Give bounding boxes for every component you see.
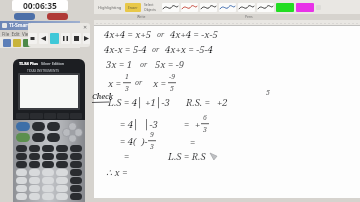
button[interactable]: Calculator key (16, 161, 27, 168)
staticText: 00:06:35 (23, 0, 57, 11)
button[interactable]: Calculator key (42, 145, 54, 152)
button[interactable]: Magenta highlighter (296, 3, 314, 12)
button[interactable]: Calculator key (56, 193, 68, 200)
staticText: 3x = 1 (106, 58, 133, 71)
staticText: = (190, 136, 196, 149)
button[interactable]: Tool (13, 39, 21, 47)
staticText: or (135, 78, 143, 88)
button[interactable]: Playback control (39, 33, 48, 44)
staticText: 4x+4 = −x−5 (170, 28, 218, 41)
button[interactable]: Calculator key (29, 177, 40, 184)
button[interactable]: Calculator key (70, 145, 82, 152)
button[interactable]: Calculator key (42, 161, 54, 168)
staticText: or (152, 45, 160, 55)
staticText: 4x−x = 5−4 (104, 43, 147, 56)
button[interactable]: Calculator key (32, 133, 45, 142)
staticText: 9 (150, 130, 154, 140)
staticText: 3 (125, 84, 129, 94)
button[interactable]: Calculator key (16, 193, 27, 200)
button[interactable]: Tool (33, 39, 41, 47)
button[interactable]: Calculator key (42, 177, 54, 184)
button[interactable]: Calculator key (32, 122, 45, 131)
button[interactable]: Reset (47, 13, 68, 20)
staticText: or (140, 60, 148, 70)
button[interactable]: Calculator key (29, 145, 40, 152)
button[interactable]: Calculator key (16, 153, 27, 160)
staticText: 3 (203, 125, 207, 135)
button[interactable]: Calculator key (16, 133, 30, 142)
button[interactable]: Calculator key (56, 153, 68, 160)
button[interactable]: Calculator key (70, 161, 82, 168)
button[interactable]: Playback control (50, 33, 59, 44)
button[interactable]: Calculator key (70, 177, 82, 184)
staticText: x = (153, 77, 166, 90)
staticText: 6 (203, 113, 207, 123)
staticText: Highlighting (98, 5, 122, 10)
button[interactable]: Green highlighter (276, 3, 294, 12)
button[interactable]: Calculator key (16, 177, 27, 184)
staticText: Select Objects (144, 2, 156, 12)
button[interactable]: Calculator key (56, 145, 68, 152)
button[interactable]: Calculator key (29, 193, 40, 200)
button[interactable]: Calculator key (56, 185, 68, 192)
button[interactable]: Pause (14, 13, 35, 20)
button[interactable]: ✕ (83, 24, 88, 30)
button[interactable]: Calculator key (16, 169, 27, 176)
button[interactable]: Calculator key (42, 153, 54, 160)
button[interactable]: Calculator key (29, 161, 40, 168)
button[interactable]: TI-84 Plus Silver Edition calculator (13, 59, 85, 202)
staticText: 5x = −9 (155, 58, 185, 71)
staticText: Eraser (128, 6, 138, 10)
staticText: Check (92, 92, 113, 102)
button[interactable]: Pen (257, 3, 274, 12)
button[interactable]: Calculator key (29, 153, 40, 160)
button[interactable]: Calculator key (29, 169, 40, 176)
staticText: R.S. = (186, 96, 211, 109)
staticText: 4x+x = −5−4 (165, 43, 213, 56)
button[interactable]: Calculator key (47, 122, 60, 131)
button[interactable]: Calculator key (29, 185, 40, 192)
staticText: 1 (125, 72, 129, 82)
button[interactable]: Calculator key (42, 185, 54, 192)
staticText: + (195, 118, 201, 131)
staticText: −9 (169, 72, 176, 82)
button[interactable]: Pen (219, 3, 236, 12)
button[interactable]: Pen (238, 3, 255, 12)
button[interactable]: Pen (181, 3, 198, 12)
staticText: = 4│ │−3 (120, 118, 158, 131)
button[interactable]: Calculator key (70, 193, 82, 200)
button[interactable]: Calculator key (16, 185, 27, 192)
staticText: TI-SmartV (9, 22, 33, 29)
button[interactable]: Calculator key (16, 145, 27, 152)
button[interactable]: Calculator key (70, 185, 82, 192)
staticText: L.S = 4│ +1│−3 (108, 96, 170, 109)
button[interactable]: Calculator key (42, 193, 54, 200)
button[interactable]: Playback control (61, 33, 70, 44)
button[interactable]: Eraser (125, 3, 141, 12)
button[interactable]: Playback control (83, 33, 90, 44)
button[interactable]: Calculator key (16, 122, 30, 131)
staticText: Pens (245, 14, 253, 19)
button[interactable]: Calculator key (42, 169, 54, 176)
button[interactable]: Calculator key (56, 177, 68, 184)
button[interactable]: Calculator key (56, 161, 68, 168)
button[interactable]: Playback control (72, 33, 81, 44)
button[interactable]: Calculator key (47, 133, 60, 142)
button[interactable]: Tool (23, 39, 31, 47)
staticText: TI-84 Plus (19, 61, 39, 66)
button[interactable]: Calculator key (70, 153, 82, 160)
button[interactable]: Pen (200, 3, 217, 12)
button[interactable]: Pen (162, 3, 179, 12)
button[interactable]: Calculator key (70, 169, 82, 176)
button[interactable]: Playback control (28, 33, 37, 44)
button[interactable]: Tool (3, 39, 11, 47)
staticText: Write (137, 14, 146, 19)
button[interactable]: Calculator key (56, 169, 68, 176)
staticText: = 4( )− (120, 135, 148, 148)
staticText: 5 (170, 84, 174, 94)
